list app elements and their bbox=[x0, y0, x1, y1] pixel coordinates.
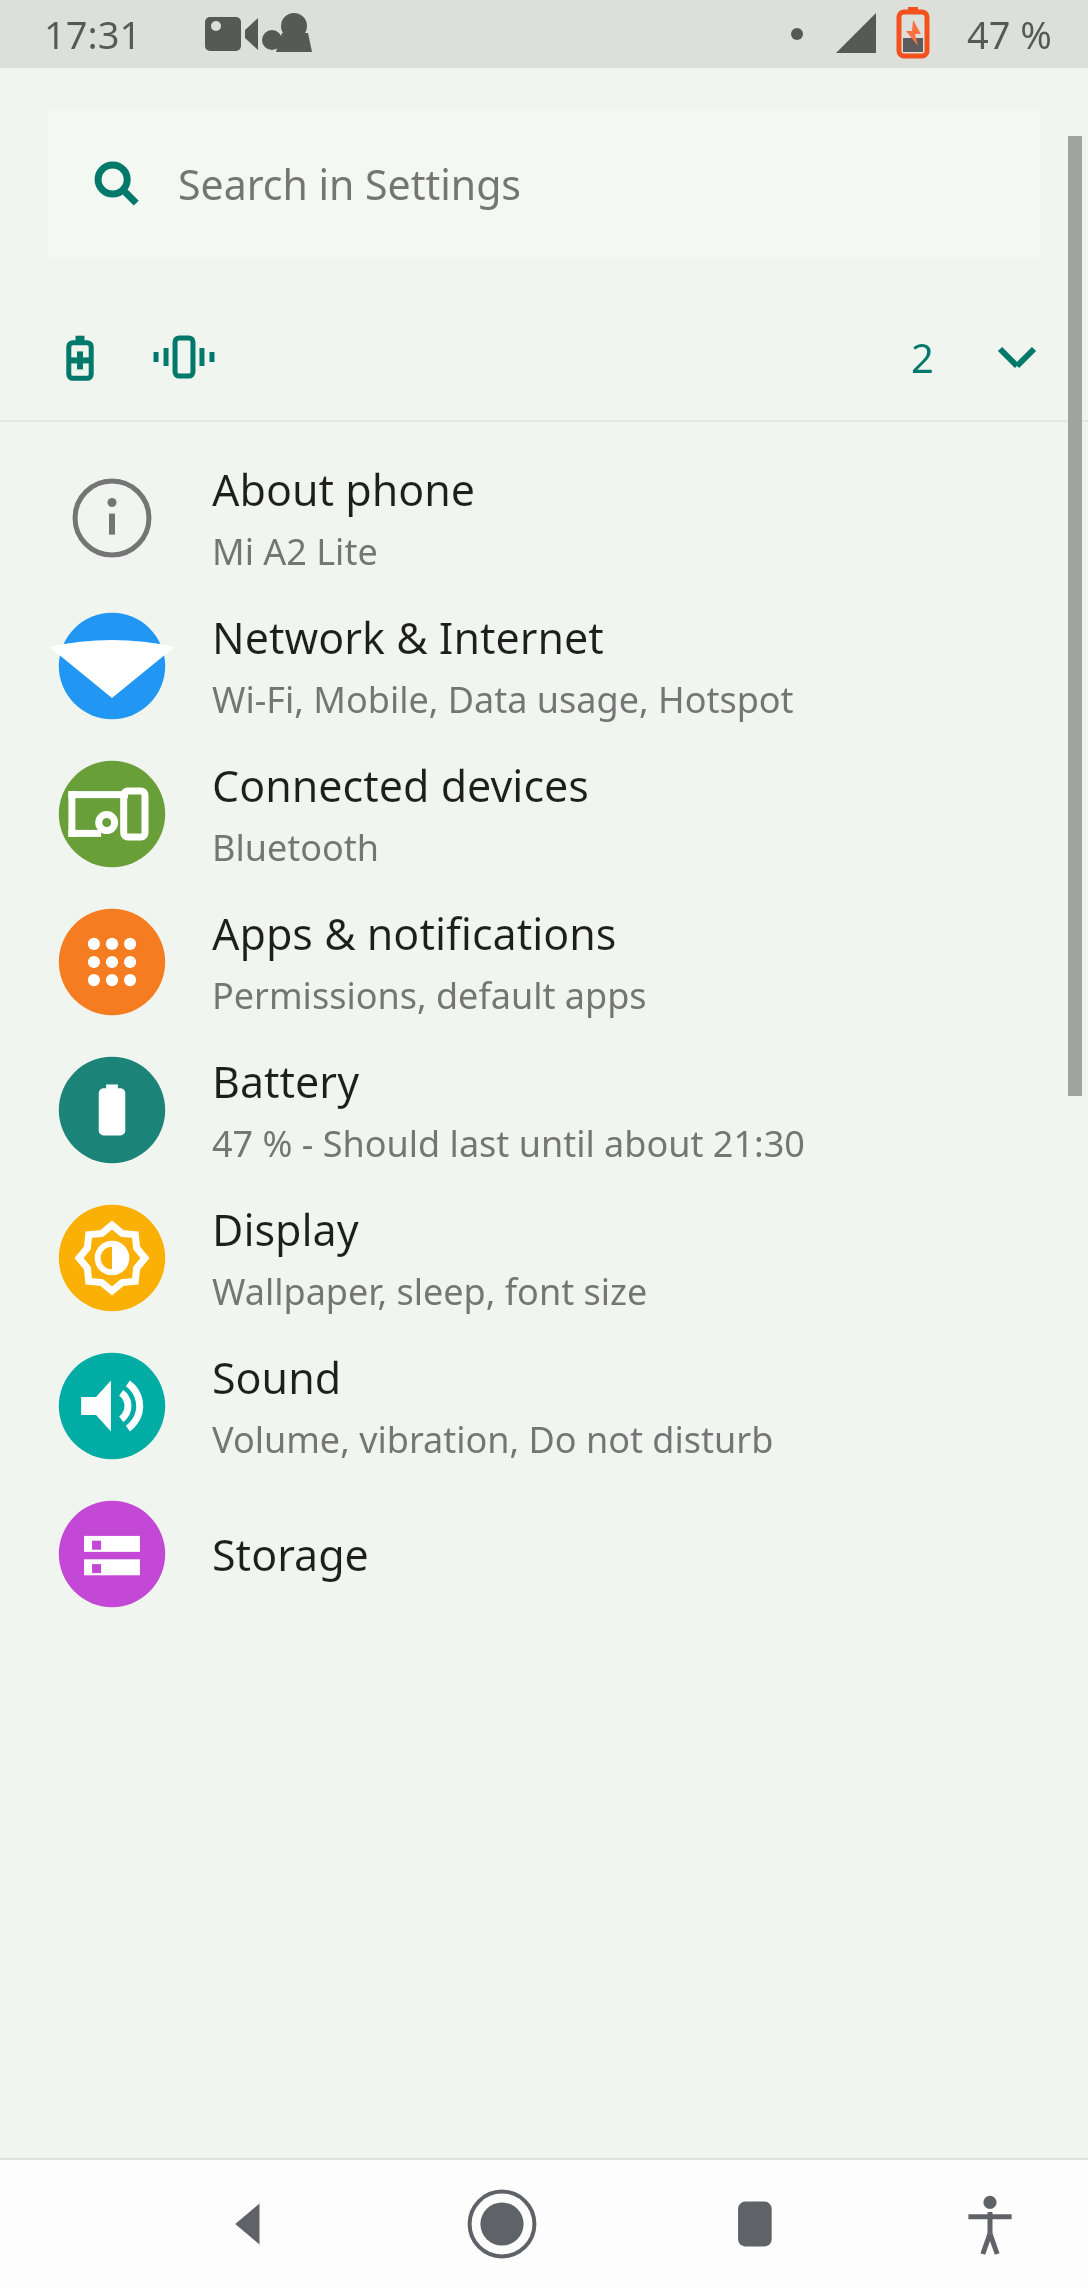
staticText: Permissions, default apps bbox=[212, 971, 647, 1020]
button[interactable]: Storage bbox=[0, 1480, 1088, 1628]
staticText: Apps & notifications bbox=[212, 904, 617, 963]
button[interactable]: Sound bbox=[0, 1332, 1088, 1480]
other: Vibration bbox=[156, 329, 212, 385]
staticText: About phone bbox=[212, 460, 476, 519]
button[interactable]: Search in Settings bbox=[48, 110, 1040, 258]
button[interactable]: Home bbox=[447, 2169, 557, 2279]
button[interactable]: Battery saver bbox=[0, 302, 1088, 412]
staticText: Wi-Fi, Mobile, Data usage, Hotspot bbox=[212, 675, 794, 724]
other: Expand bbox=[990, 330, 1044, 384]
button[interactable]: Recent apps bbox=[701, 2169, 811, 2279]
staticText: 47 % - Should last until about 21:30 bbox=[212, 1119, 805, 1168]
staticText: Search in Settings bbox=[178, 156, 522, 212]
staticText: Volume, vibration, Do not disturb bbox=[212, 1415, 774, 1464]
button[interactable]: Battery bbox=[0, 1036, 1088, 1184]
staticText: Mi A2 Lite bbox=[212, 527, 378, 576]
staticText: Network & Internet bbox=[212, 608, 604, 667]
staticText: Connected devices bbox=[212, 756, 589, 815]
button[interactable]: About phone bbox=[0, 444, 1088, 592]
button[interactable]: Accessibility bbox=[935, 2169, 1045, 2279]
staticText: Wallpaper, sleep, font size bbox=[212, 1267, 648, 1316]
button[interactable]: Back bbox=[193, 2169, 303, 2279]
staticText: 2 bbox=[911, 330, 934, 384]
other: Battery saver bbox=[52, 329, 108, 385]
button[interactable]: Display bbox=[0, 1184, 1088, 1332]
staticText: Bluetooth bbox=[212, 823, 380, 872]
staticText: 17:31 bbox=[44, 8, 142, 60]
button[interactable]: Network & Internet bbox=[0, 592, 1088, 740]
staticText: Storage bbox=[212, 1525, 369, 1584]
staticText: 47 % bbox=[967, 8, 1052, 60]
button[interactable]: Apps & notifications bbox=[0, 888, 1088, 1036]
staticText: Sound bbox=[212, 1348, 342, 1407]
staticText: Display bbox=[212, 1200, 359, 1259]
button[interactable]: Connected devices bbox=[0, 740, 1088, 888]
staticText: Battery bbox=[212, 1052, 360, 1111]
